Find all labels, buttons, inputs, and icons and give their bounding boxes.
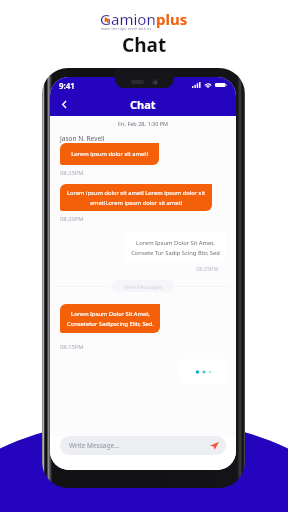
staticText: make the right move with us bbox=[101, 26, 152, 30]
button[interactable]: New Messages bbox=[112, 280, 174, 292]
staticText: Write Message... bbox=[69, 441, 120, 450]
staticText: Chat bbox=[122, 32, 167, 58]
button[interactable]: Write Message... bbox=[60, 436, 226, 455]
staticText: New Messages bbox=[124, 283, 163, 290]
staticText: plus bbox=[156, 9, 188, 29]
staticText: amion bbox=[111, 9, 156, 29]
button[interactable]: Lorem ipsum dolor sit ametl bbox=[60, 143, 159, 165]
staticText: 08:20PM bbox=[60, 215, 84, 223]
staticText: Lorem Ipsum Dolor Sit Amet, Consete Tur … bbox=[131, 239, 220, 257]
staticText: Lorem ipsum dolor sit ametl bbox=[71, 150, 148, 158]
staticText: 9:41 bbox=[59, 80, 75, 91]
staticText: Chat bbox=[130, 97, 156, 112]
staticText: Lorem ipsum dolor sit ametl Lorem ipsum … bbox=[60, 189, 212, 207]
staticText: G bbox=[100, 9, 111, 29]
staticText: Jason N. Revell bbox=[60, 134, 105, 143]
staticText: 08:25PM bbox=[196, 265, 219, 272]
staticText: 08:15PM bbox=[60, 343, 84, 351]
button[interactable]: Typing bbox=[178, 359, 228, 384]
staticText: 08:25PM bbox=[60, 169, 84, 177]
button[interactable]: Lorem Ipsum Dolor Sit Amet, Consete Tur … bbox=[124, 233, 226, 262]
button[interactable]: Lorem Ipsum Dolor Sit Amet, Consetetur S… bbox=[60, 304, 160, 333]
button[interactable]: Lorem ipsum dolor sit ametl Lorem ipsum … bbox=[60, 184, 212, 211]
staticText: Fri, Feb 28, 1:30 PM bbox=[50, 120, 236, 127]
staticText: Lorem Ipsum Dolor Sit Amet, Consetetur S… bbox=[67, 310, 154, 328]
button[interactable]: Back bbox=[56, 96, 73, 113]
